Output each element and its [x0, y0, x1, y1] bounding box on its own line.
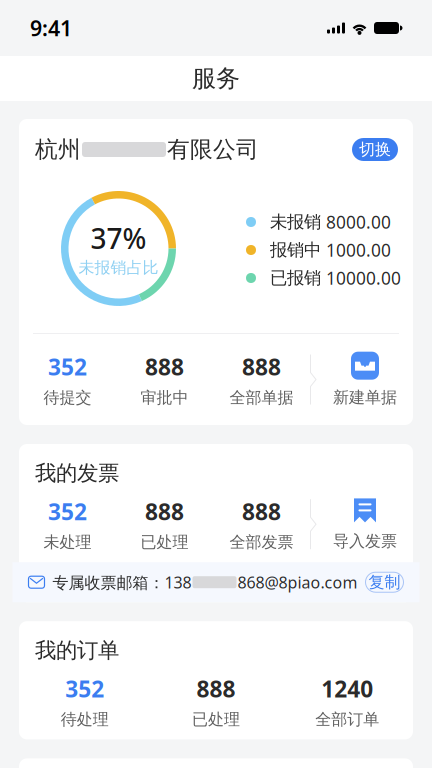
staticText: 888 [196, 673, 235, 704]
staticText: 我的订单 [35, 637, 119, 663]
button[interactable]: 切换 [352, 138, 398, 161]
staticText: 导入发票 [333, 531, 397, 551]
button[interactable]: 888 [213, 353, 310, 405]
staticText: 审批中 [140, 388, 188, 407]
button[interactable]: 352 [19, 675, 150, 727]
staticText: 1000.00 [326, 238, 391, 261]
staticText: 8000.00 [326, 210, 391, 233]
staticText: 9:41 [30, 14, 72, 42]
staticText: 全部单据 [229, 388, 293, 407]
button[interactable]: 复制 [365, 572, 403, 592]
button[interactable]: 352 [19, 498, 116, 550]
staticText: 888 [145, 496, 184, 526]
staticText: 复制 [368, 572, 400, 592]
staticText: 352 [48, 496, 87, 526]
staticText: 已处理 [140, 532, 188, 552]
staticText: 全部发票 [229, 532, 293, 552]
staticText: 专属收票邮箱：138 [52, 572, 191, 593]
staticText: 未报销占比 [78, 258, 158, 277]
button[interactable]: 新建单据 [317, 347, 413, 411]
staticText: 杭州 [35, 136, 81, 163]
staticText: 868@8piao.com [237, 572, 357, 593]
staticText: 888 [242, 496, 281, 526]
staticText: 我的发票 [35, 460, 119, 486]
staticText: 未处理 [43, 532, 91, 552]
button[interactable]: 888 [116, 498, 213, 550]
staticText: 服务 [192, 64, 240, 93]
staticText: 888 [242, 352, 281, 382]
staticText: 全部订单 [315, 710, 379, 729]
button[interactable]: 导入发票 [317, 492, 413, 556]
staticText: 888 [145, 352, 184, 382]
staticText: 有限公司 [167, 136, 259, 163]
button[interactable]: 352 [19, 353, 116, 405]
button[interactable]: 888 [150, 675, 282, 727]
staticText: 切换 [359, 140, 391, 159]
staticText: 待提交 [43, 388, 91, 407]
button[interactable]: 888 [213, 498, 310, 550]
staticText: 已报销 [270, 267, 321, 289]
staticText: 352 [65, 673, 104, 704]
staticText: 1240 [321, 673, 373, 704]
button[interactable]: 1240 [282, 675, 413, 727]
staticText: 报销中 [270, 239, 321, 261]
staticText: 未报销 [270, 211, 321, 233]
staticText: 352 [48, 352, 87, 382]
staticText: 10000.00 [326, 266, 401, 289]
button[interactable]: 888 [116, 353, 213, 405]
staticText: 待处理 [61, 710, 109, 729]
staticText: 已处理 [192, 710, 240, 729]
staticText: 新建单据 [333, 388, 397, 407]
staticText: 37% [90, 220, 146, 257]
